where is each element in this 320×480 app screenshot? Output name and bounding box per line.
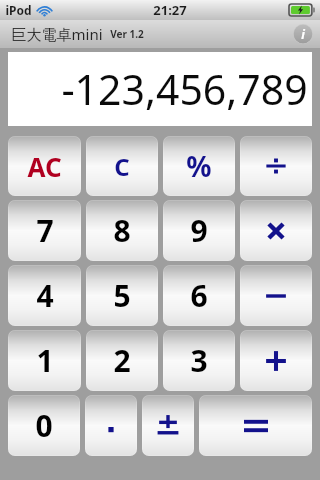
staticText: Ver 1.2	[110, 27, 144, 41]
button[interactable]: 2	[86, 330, 158, 391]
staticText: 6	[190, 275, 208, 316]
button[interactable]	[240, 265, 312, 326]
button[interactable]: Info	[293, 24, 313, 44]
button[interactable]: 3	[163, 330, 235, 391]
staticText: 5	[113, 275, 131, 316]
button[interactable]: %	[163, 136, 235, 196]
staticText: 3	[190, 340, 208, 381]
staticText: 0	[35, 405, 53, 446]
button[interactable]	[142, 395, 194, 456]
button[interactable]: 1	[8, 330, 81, 391]
staticText: 4	[36, 275, 54, 316]
staticText: 8	[113, 210, 131, 251]
button[interactable]: 4	[8, 265, 81, 326]
button[interactable]: C	[86, 136, 158, 196]
staticText: iPod	[5, 2, 32, 18]
staticText: C	[114, 150, 130, 183]
button[interactable]	[240, 136, 312, 196]
button[interactable]: 0	[8, 395, 80, 456]
button[interactable]: 6	[163, 265, 235, 326]
staticText: AC	[27, 149, 62, 184]
button[interactable]: AC	[8, 136, 81, 196]
button[interactable]: 7	[8, 200, 81, 261]
button[interactable]: 5	[86, 265, 158, 326]
button[interactable]	[240, 330, 312, 391]
staticText: 1	[36, 340, 54, 381]
staticText: i	[301, 26, 305, 42]
button[interactable]	[199, 395, 312, 456]
staticText: 2	[113, 340, 131, 381]
staticText: 9	[190, 210, 208, 251]
staticText: %	[186, 147, 212, 185]
button[interactable]: 9	[163, 200, 235, 261]
button[interactable]: 8	[86, 200, 158, 261]
staticText: -123,456,789	[61, 61, 308, 117]
button[interactable]	[240, 200, 312, 261]
staticText: 7	[36, 210, 54, 251]
button[interactable]	[85, 395, 137, 456]
staticText: 21:27	[153, 1, 187, 19]
staticText: 巨大電卓mini	[11, 24, 103, 44]
